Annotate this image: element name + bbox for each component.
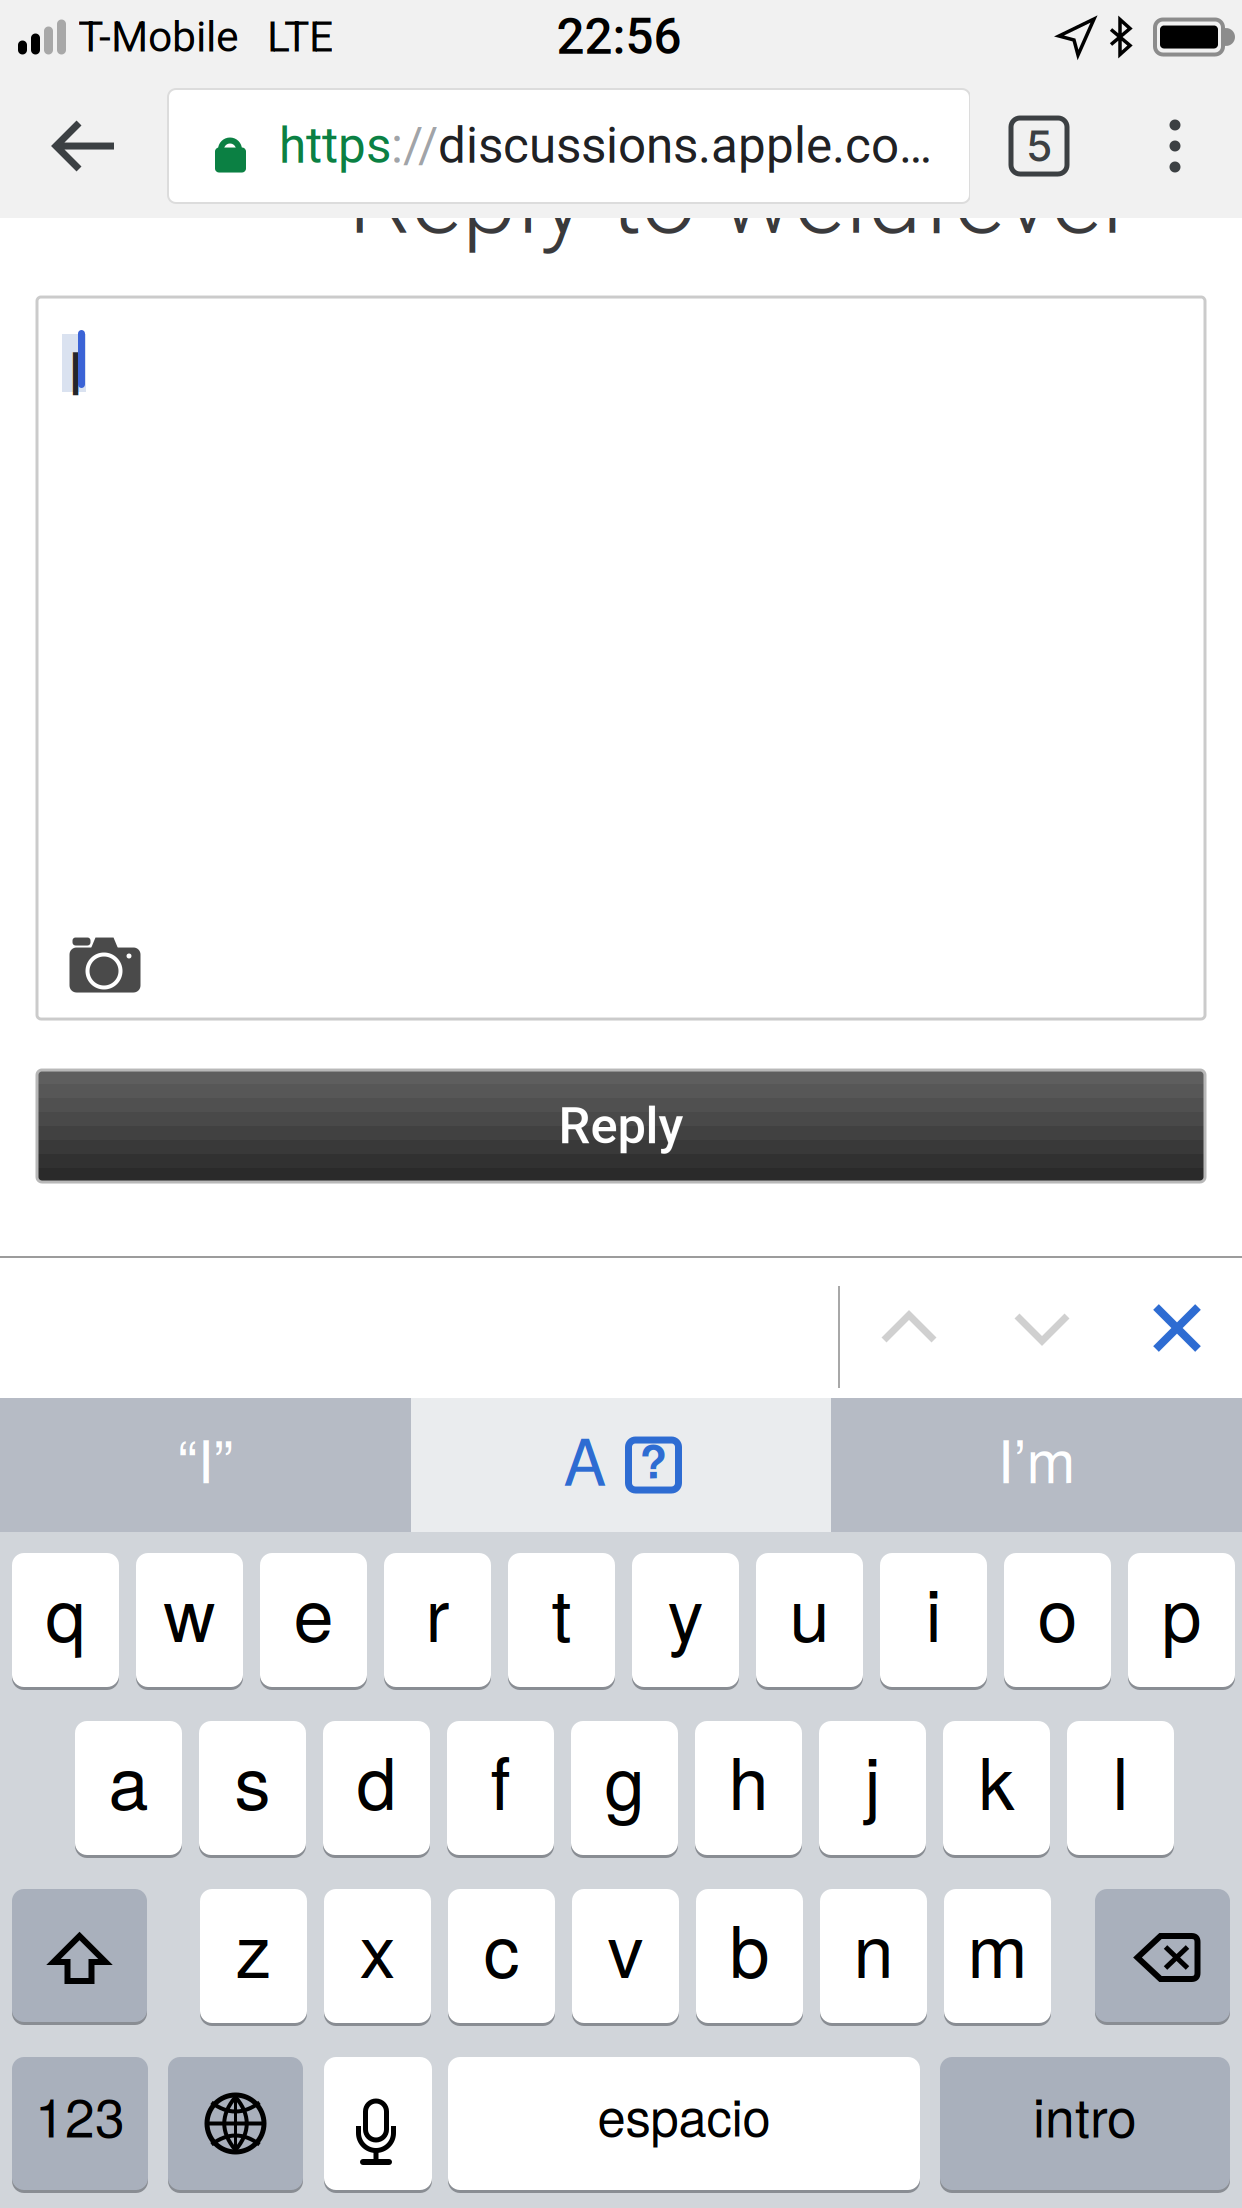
staticText: k: [978, 1727, 1014, 1830]
button[interactable]: b: [696, 1887, 803, 2025]
staticText: 123: [35, 2076, 125, 2153]
staticText: z: [235, 1895, 271, 1998]
staticText: v: [607, 1895, 643, 1998]
staticText: Reply: [558, 1096, 683, 1156]
button[interactable]: r: [384, 1551, 491, 1689]
button[interactable]: Tabs: [970, 74, 1108, 218]
staticText: m: [967, 1895, 1027, 1998]
button[interactable]: s: [199, 1719, 306, 1857]
button[interactable]: h: [695, 1719, 802, 1857]
button[interactable]: Dictation: [324, 2055, 432, 2192]
staticText: espacio: [597, 2078, 770, 2151]
button[interactable]: p: [1128, 1551, 1235, 1689]
staticText: a: [108, 1727, 148, 1830]
staticText: discussions.apple.co…: [438, 117, 932, 175]
staticText: b: [729, 1895, 769, 1998]
staticText: t: [551, 1559, 571, 1662]
button[interactable]: o: [1004, 1551, 1111, 1689]
staticText: ://: [391, 117, 438, 175]
button[interactable]: Shift: [12, 1887, 147, 2024]
button[interactable]: z: [200, 1887, 307, 2025]
staticText: 22:56: [556, 8, 681, 66]
button[interactable]: Previous field: [842, 1258, 976, 1398]
button[interactable]: x: [324, 1887, 431, 2025]
button[interactable]: l: [1067, 1719, 1174, 1857]
button[interactable]: v: [572, 1887, 679, 2025]
staticText: n: [853, 1895, 893, 1998]
staticText: “I”: [177, 1416, 233, 1500]
button[interactable]: https: [168, 74, 970, 218]
button[interactable]: I’m: [831, 1398, 1242, 1532]
button[interactable]: Reply: [37, 1070, 1205, 1182]
button[interactable]: Next field: [975, 1258, 1109, 1398]
button[interactable]: a: [75, 1719, 182, 1857]
staticText: r: [425, 1559, 449, 1662]
staticText: g: [604, 1727, 644, 1830]
button[interactable]: intro: [940, 2055, 1230, 2192]
staticText: i: [925, 1559, 941, 1662]
staticText: h: [728, 1727, 768, 1830]
staticText: I’m: [997, 1416, 1075, 1500]
button[interactable]: Back: [0, 74, 168, 218]
staticText: LTE: [267, 12, 333, 62]
staticText: o: [1037, 1559, 1077, 1662]
staticText: A: [563, 1412, 606, 1504]
button[interactable]: w: [136, 1551, 243, 1689]
staticText: x: [359, 1895, 395, 1998]
button[interactable]: Hide keyboard: [1110, 1258, 1242, 1398]
button[interactable]: u: [756, 1551, 863, 1689]
button[interactable]: i: [880, 1551, 987, 1689]
button[interactable]: y: [632, 1551, 739, 1689]
staticText: 5: [1026, 120, 1052, 172]
staticText: q: [45, 1559, 85, 1662]
button[interactable]: Menu: [1108, 74, 1242, 218]
button[interactable]: n: [820, 1887, 927, 2025]
staticText: d: [356, 1727, 396, 1830]
button[interactable]: q: [12, 1551, 119, 1689]
staticText: j: [864, 1727, 880, 1830]
button[interactable]: Next keyboard: [168, 2055, 303, 2192]
button[interactable]: A: [411, 1398, 831, 1532]
staticText: T-Mobile: [78, 12, 239, 62]
staticText: intro: [1033, 2076, 1137, 2153]
button[interactable]: Delete: [1095, 1887, 1230, 2024]
button[interactable]: Add photo: [59, 922, 151, 996]
staticText: e: [293, 1559, 333, 1662]
staticText: y: [667, 1559, 703, 1662]
staticText: p: [1161, 1559, 1201, 1662]
button[interactable]: d: [323, 1719, 430, 1857]
staticText: s: [234, 1727, 270, 1830]
button[interactable]: 123: [12, 2055, 148, 2192]
staticText: w: [163, 1559, 215, 1662]
button[interactable]: f: [447, 1719, 554, 1857]
button[interactable]: m: [944, 1887, 1051, 2025]
button[interactable]: j: [819, 1719, 926, 1857]
staticText: f: [490, 1727, 510, 1830]
button[interactable]: k: [943, 1719, 1050, 1857]
staticText: Reply to weldfever: [348, 141, 1135, 257]
button[interactable]: “I”: [0, 1398, 411, 1532]
staticText: https: [279, 117, 391, 175]
button[interactable]: t: [508, 1551, 615, 1689]
staticText: u: [789, 1559, 829, 1662]
staticText: l: [1112, 1727, 1128, 1830]
button[interactable]: c: [448, 1887, 555, 2025]
button[interactable]: g: [571, 1719, 678, 1857]
staticText: I: [67, 328, 83, 412]
button[interactable]: e: [260, 1551, 367, 1689]
staticText: c: [483, 1895, 519, 1998]
staticText: ?: [639, 1427, 667, 1492]
button[interactable]: espacio: [448, 2055, 920, 2192]
